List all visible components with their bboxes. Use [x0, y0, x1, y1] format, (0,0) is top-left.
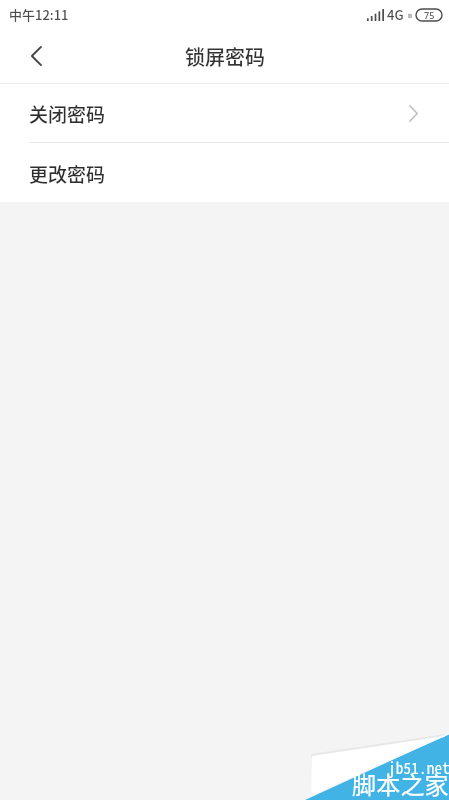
- button[interactable]: 关闭密码: [0, 84, 449, 142]
- staticText: jb51.net: [388, 757, 449, 779]
- staticText: 4G: [387, 5, 404, 24]
- staticText: 关闭密码: [29, 100, 106, 128]
- button[interactable]: 更改密码: [0, 143, 449, 202]
- staticText: 75: [424, 9, 435, 21]
- staticText: 脚本之家: [352, 766, 449, 800]
- staticText: 锁屏密码: [185, 42, 265, 71]
- button[interactable]: Back: [0, 28, 72, 84]
- staticText: 更改密码: [29, 160, 106, 188]
- staticText: 中午12:11: [9, 5, 69, 24]
